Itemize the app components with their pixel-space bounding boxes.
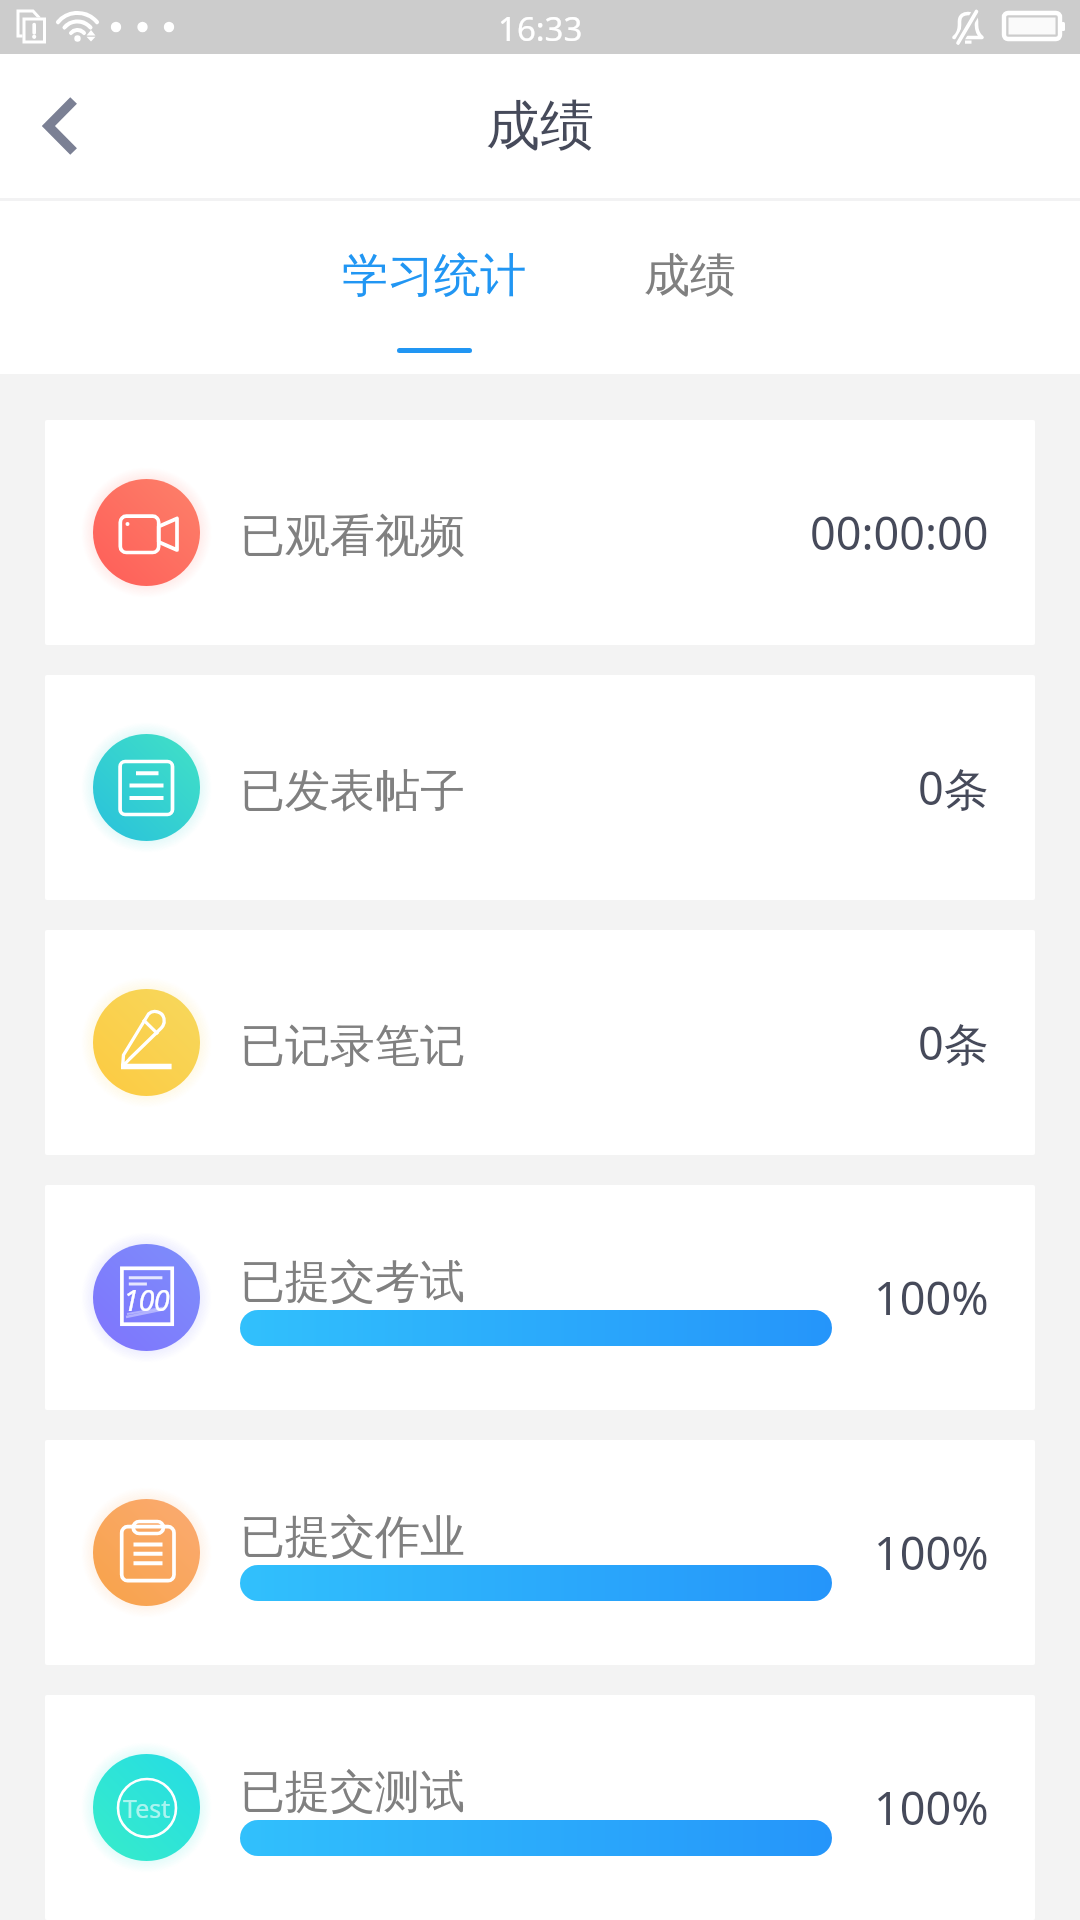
staticText: 已提交考试 [240,1254,465,1311]
staticText: 已提交作业 [240,1509,465,1566]
button[interactable]: 已提交作业 [45,1440,1035,1665]
button[interactable]: 学习统计 [329,201,539,374]
button[interactable]: 已记录笔记 [45,930,1035,1155]
staticText: 已观看视频 [240,508,465,565]
button[interactable]: 已发表帖子 [45,675,1035,900]
staticText: 100% [874,1777,989,1838]
staticText: 已发表帖子 [240,763,465,820]
button[interactable]: 成绩 [585,201,795,374]
staticText: 100% [874,1267,989,1328]
staticText: 100% [874,1522,989,1583]
staticText: Test [123,1791,171,1825]
staticText: 0条 [918,1012,989,1073]
staticText: 已记录笔记 [240,1018,465,1075]
staticText: 100 [123,1280,170,1319]
staticText: 学习统计 [342,247,526,305]
staticText: 成绩 [486,92,594,160]
staticText: 成绩 [644,247,736,305]
staticText: 已提交测试 [240,1764,465,1821]
button[interactable]: Test [45,1695,1035,1920]
staticText: 00:00:00 [810,502,989,563]
button[interactable]: 已观看视频 [45,420,1035,645]
button[interactable]: 100 [45,1185,1035,1410]
staticText: 16:33 [498,6,583,51]
staticText: 0条 [918,757,989,818]
button[interactable]: Back [8,75,110,177]
